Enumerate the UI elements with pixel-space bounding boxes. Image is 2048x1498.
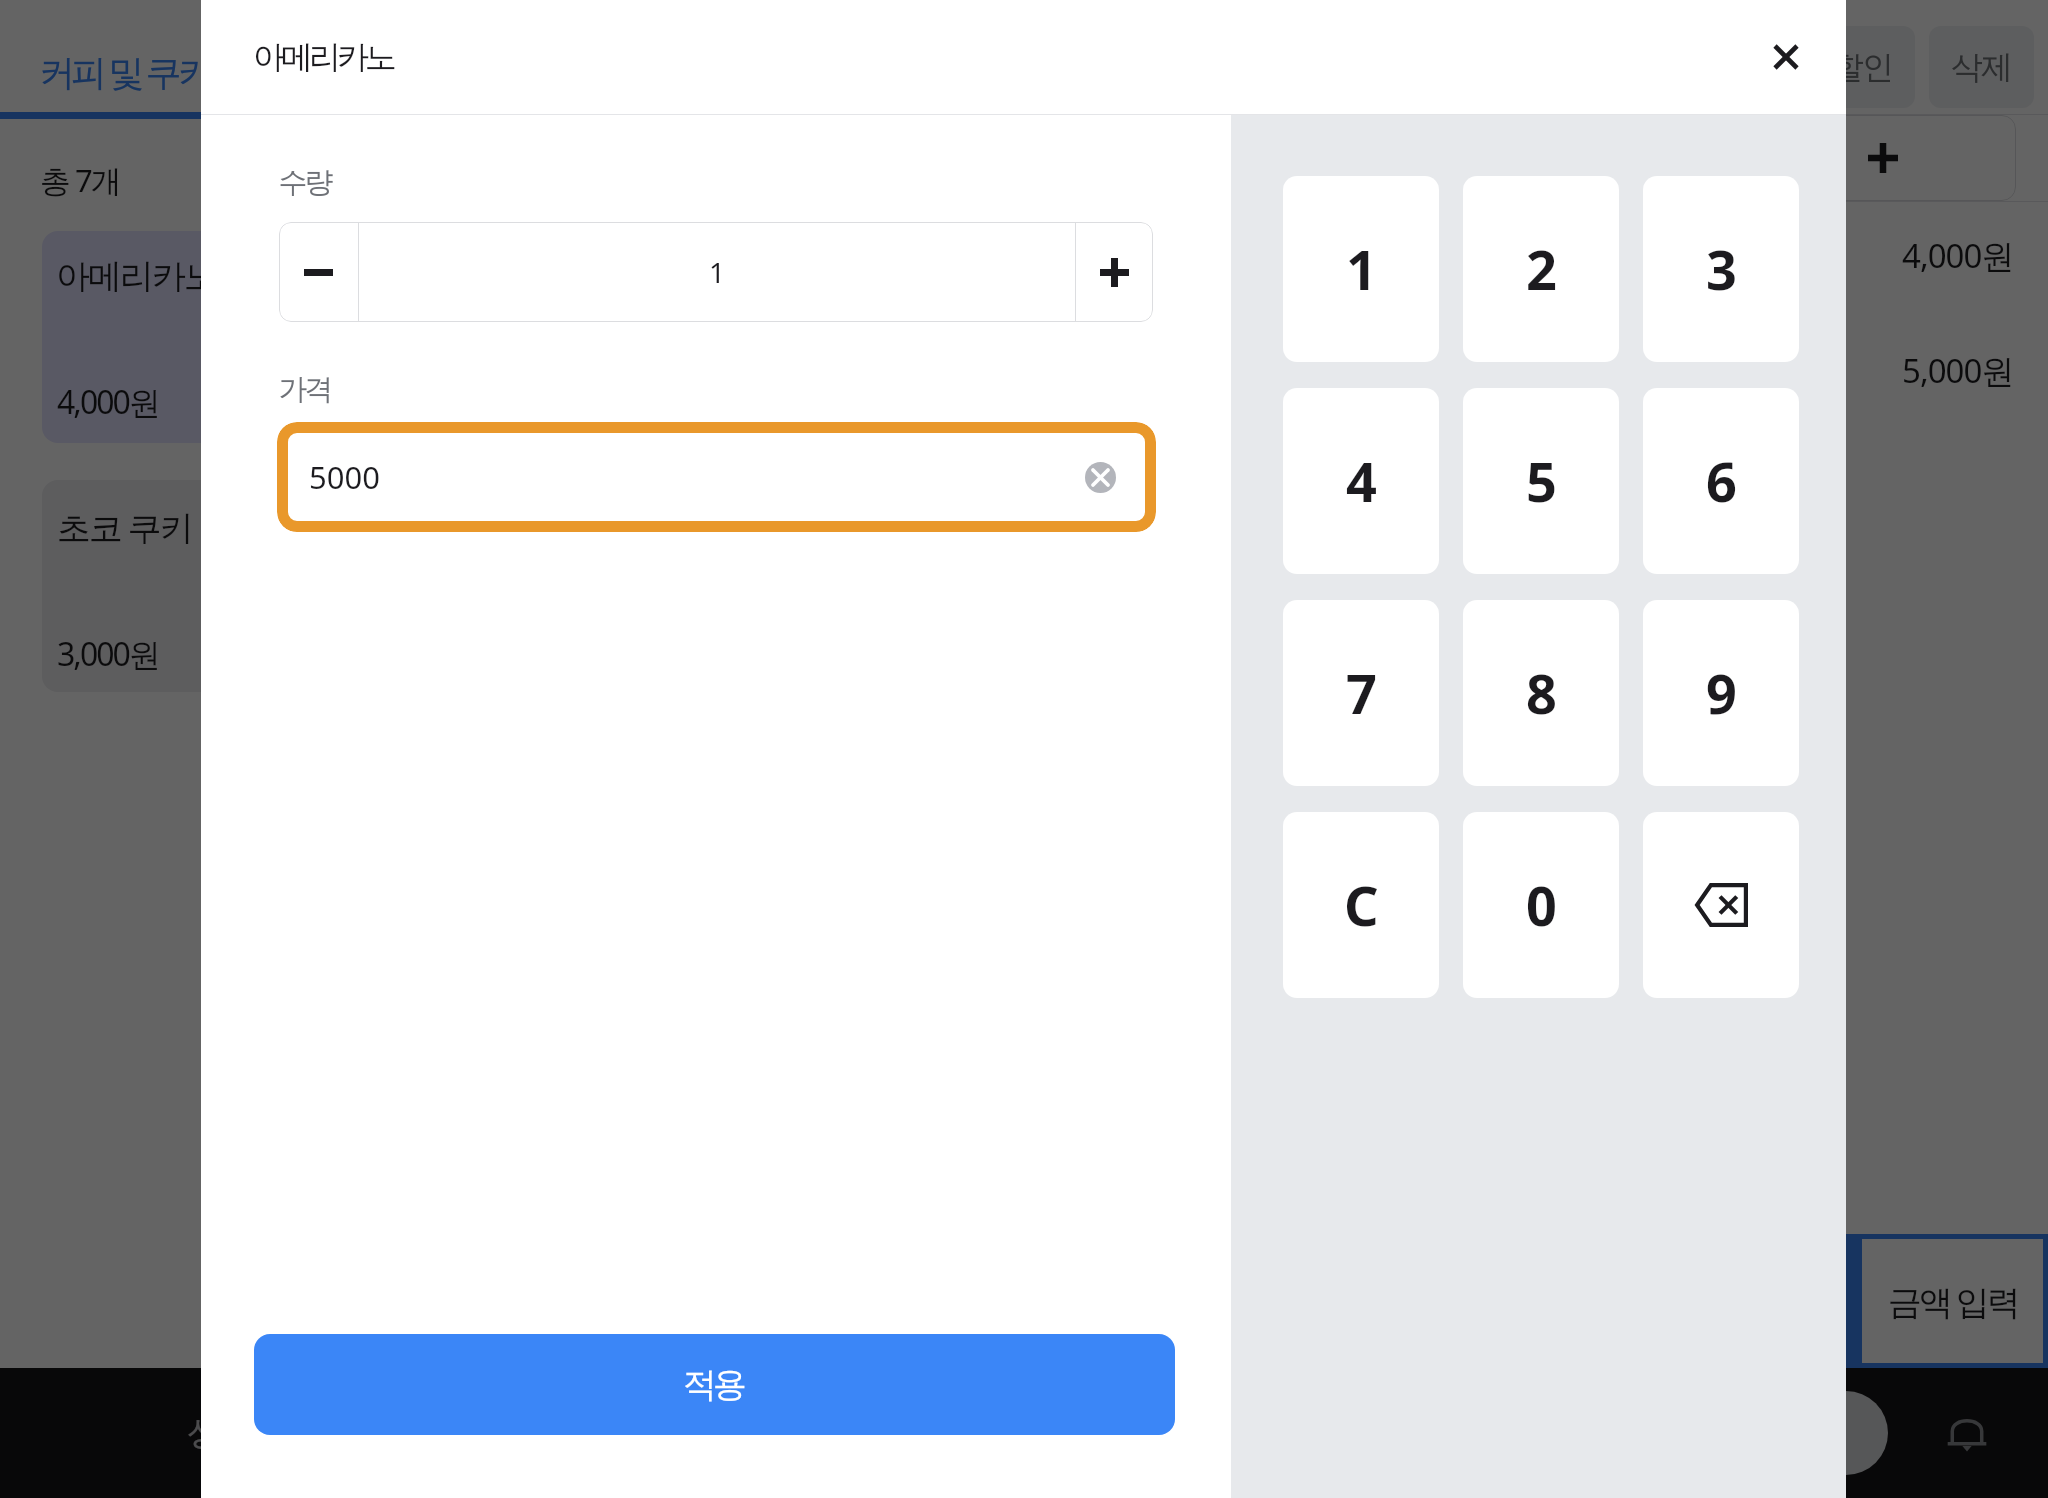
- button[interactable]: Notifications: [1932, 1398, 2002, 1468]
- staticText: 할인: [1833, 47, 1893, 87]
- staticText: 총 7개: [40, 159, 120, 201]
- staticText: 5000: [309, 456, 380, 498]
- button[interactable]: 0: [1463, 812, 1619, 998]
- staticText: 2: [1526, 232, 1557, 306]
- button[interactable]: 적용: [254, 1334, 1175, 1435]
- staticText: 가격: [280, 371, 332, 408]
- staticText: 커피 및 쿠키: [39, 47, 210, 96]
- button[interactable]: 아메리카노: [42, 231, 430, 443]
- staticText: 4,000원: [57, 380, 159, 424]
- staticText: 8: [1526, 656, 1557, 730]
- button[interactable]: 할인: [1810, 26, 1915, 108]
- staticText: 아메리카노: [57, 255, 217, 298]
- button[interactable]: 금액 입력: [1862, 1239, 2043, 1363]
- button[interactable]: Clear price: [1085, 462, 1116, 493]
- staticText: 금액 입력: [1888, 1278, 2018, 1324]
- staticText: 상품: [188, 1412, 252, 1455]
- staticText: C: [1344, 868, 1379, 942]
- button[interactable]: 3: [1643, 176, 1799, 362]
- staticText: 0: [1526, 868, 1557, 942]
- staticText: 6: [1706, 444, 1737, 518]
- button[interactable]: Close: [1748, 19, 1824, 95]
- button[interactable]: 초코 쿠키: [42, 480, 430, 692]
- button[interactable]: 9: [1643, 600, 1799, 786]
- staticText: 수량: [280, 164, 332, 201]
- button[interactable]: 8: [1463, 600, 1619, 786]
- staticText: 7: [1346, 656, 1377, 730]
- staticText: 1: [709, 253, 726, 291]
- staticText: 3: [1706, 232, 1737, 306]
- staticText: 5: [1526, 444, 1557, 518]
- staticText: 1: [1346, 232, 1377, 306]
- staticText: 적용: [685, 1363, 745, 1406]
- staticText: 초코 쿠키: [57, 504, 192, 550]
- button[interactable]: 5: [1463, 388, 1619, 574]
- button[interactable]: 4: [1283, 388, 1439, 574]
- button[interactable]: Backspace: [1643, 812, 1799, 998]
- button[interactable]: 6: [1643, 388, 1799, 574]
- button[interactable]: 결제 완결: [1638, 1391, 1888, 1475]
- staticText: 9: [1706, 656, 1737, 730]
- button[interactable]: 2: [1463, 176, 1619, 362]
- button[interactable]: 5000: [277, 422, 1156, 532]
- staticText: 삭제: [1952, 47, 2012, 87]
- button[interactable]: Add item: [1816, 115, 2016, 201]
- button[interactable]: 삭제: [1929, 26, 2034, 108]
- button[interactable]: Increase quantity: [1076, 222, 1153, 322]
- button[interactable]: 1: [1283, 176, 1439, 362]
- staticText: 아메리카노: [255, 37, 395, 77]
- button[interactable]: C: [1283, 812, 1439, 998]
- button[interactable]: Decrease quantity: [279, 222, 358, 322]
- staticText: 3,000원: [57, 632, 159, 676]
- button[interactable]: 7: [1283, 600, 1439, 786]
- staticText: 4: [1346, 444, 1377, 518]
- staticText: 5,000원: [1902, 348, 2014, 393]
- staticText: 4,000원: [1902, 233, 2014, 278]
